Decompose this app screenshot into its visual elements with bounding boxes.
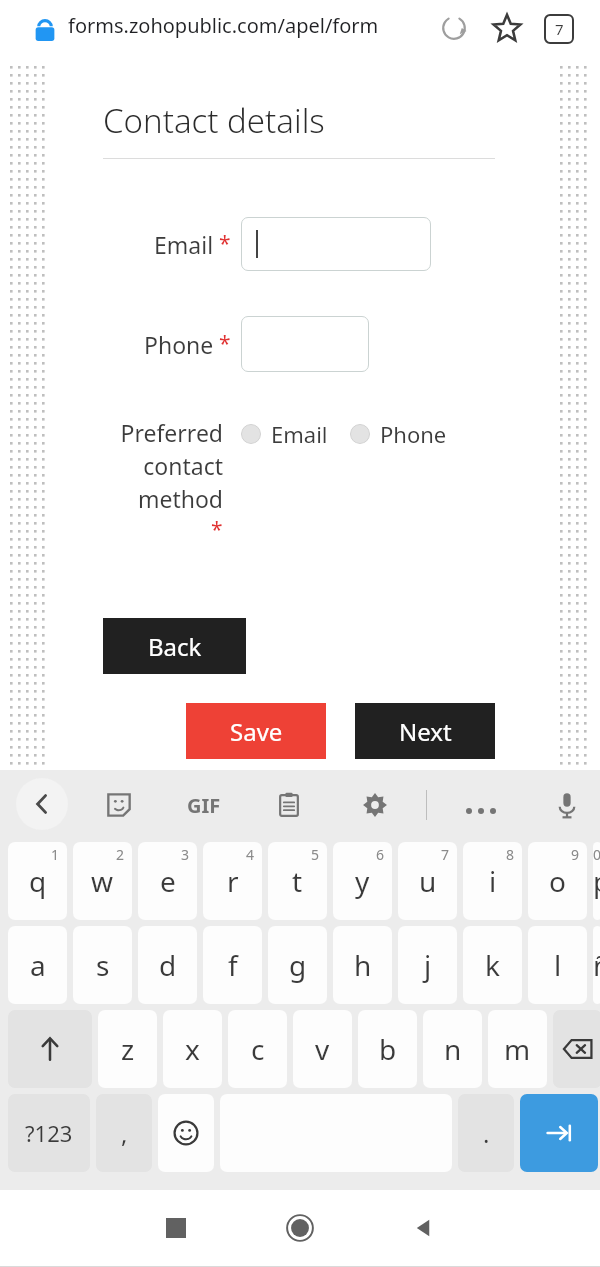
staticText: 5 [311,845,320,864]
staticText: Back [148,630,202,663]
button[interactable]: Back [400,1204,448,1252]
button[interactable]: ñ [593,926,600,1004]
button[interactable]: Next field [520,1094,598,1172]
button[interactable]: h [333,926,392,1004]
staticText: o [549,862,566,900]
button[interactable]: Bookmark [487,8,527,48]
staticText: Next [399,715,452,748]
button[interactable]: k [463,926,522,1004]
staticText: 8 [506,845,515,864]
button[interactable]: s [73,926,132,1004]
button[interactable]: , [96,1094,152,1172]
staticText: e [160,862,176,900]
button[interactable]: e [138,842,197,920]
button[interactable]: Home [276,1204,324,1252]
staticText: j [424,946,432,984]
button[interactable]: Stickers [98,784,140,826]
button[interactable]: g [268,926,327,1004]
button[interactable]: f [203,926,262,1004]
staticText: 7 [555,19,564,39]
button[interactable]: Next [355,703,495,759]
staticText: y [355,862,370,900]
staticText: . [483,1117,490,1150]
button[interactable]: o [528,842,587,920]
button[interactable]: Back [16,778,68,830]
staticText: , [121,1117,128,1150]
button[interactable]: Settings [354,784,396,826]
staticText: 7 [441,845,450,864]
staticText: c [251,1030,265,1068]
button[interactable]: x [163,1010,222,1088]
button[interactable]: n [423,1010,482,1088]
button[interactable]: p [593,842,600,920]
button[interactable]: v [293,1010,352,1088]
staticText: 2 [116,845,125,864]
staticText: * [219,329,231,358]
button[interactable]: Site security [26,12,64,50]
button[interactable]: q [8,842,67,920]
staticText: f [228,946,238,984]
button[interactable]: t [268,842,327,920]
staticText: v [315,1030,330,1068]
button[interactable]: Shift [8,1010,92,1088]
button[interactable]: u [398,842,457,920]
staticText: Contact details [103,98,325,143]
staticText: l [554,946,562,984]
button[interactable]: a [8,926,67,1004]
staticText: d [159,946,177,984]
staticText: x [185,1030,200,1068]
button[interactable]: Save [186,703,326,759]
button[interactable]: ?123 [8,1094,90,1172]
staticText: h [354,946,372,984]
button[interactable]: Email [241,417,328,451]
staticText: t [292,862,303,900]
staticText: forms.zohopublic.com/apel/form [68,12,428,39]
staticText: Email [154,229,214,260]
button[interactable]: m [488,1010,547,1088]
staticText: s [96,946,110,984]
staticText: Preferred contact method [103,417,223,515]
staticText: 0 [593,845,595,864]
button[interactable]: More options [456,786,506,836]
button[interactable]: GIF [178,788,230,822]
button[interactable]: Tabs [541,11,577,47]
button[interactable] [241,217,431,271]
button[interactable]: b [358,1010,417,1088]
staticText: 4 [246,845,255,864]
staticText: p [593,862,600,900]
button[interactable]: Reload [434,8,474,48]
button[interactable] [241,316,369,372]
button[interactable]: Backspace [553,1010,600,1088]
button[interactable]: i [463,842,522,920]
button[interactable]: . [458,1094,514,1172]
button[interactable]: Clipboard [268,784,310,826]
button[interactable]: l [528,926,587,1004]
button[interactable]: Back [103,618,246,674]
button[interactable]: r [203,842,262,920]
staticText: Email [271,419,328,449]
staticText: r [227,862,239,900]
staticText: w [91,862,114,900]
button[interactable]: y [333,842,392,920]
staticText: 3 [181,845,190,864]
staticText: * [219,229,231,258]
staticText: ?123 [25,1118,73,1148]
button[interactable]: j [398,926,457,1004]
button[interactable]: Recent apps [152,1204,200,1252]
staticText: z [121,1030,135,1068]
staticText: k [485,946,500,984]
staticText: i [489,862,497,900]
staticText: 6 [376,845,385,864]
button[interactable]: z [98,1010,157,1088]
staticText: * [211,515,223,544]
button[interactable]: Emoji [158,1094,214,1172]
button[interactable]: Phone [350,417,447,451]
button[interactable]: d [138,926,197,1004]
staticText: GIF [187,792,221,819]
button[interactable]: Voice input [546,784,588,826]
button[interactable]: w [73,842,132,920]
staticText: a [30,946,46,984]
staticText: m [504,1030,531,1068]
button[interactable]: c [228,1010,287,1088]
